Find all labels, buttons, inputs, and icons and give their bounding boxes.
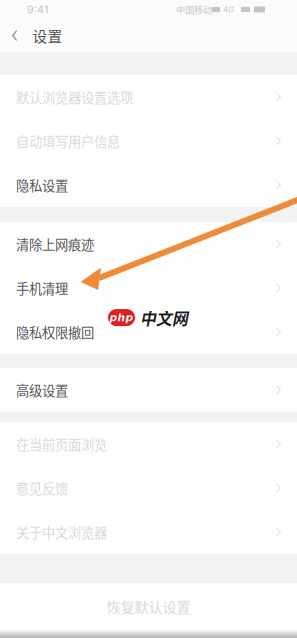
button[interactable]: 自动填写用户信息 — [0, 119, 297, 163]
staticText: 高级设置 — [16, 380, 68, 400]
button[interactable]: 恢复默认设置 — [0, 583, 297, 630]
staticText: php — [109, 311, 133, 324]
staticText: 中国移动 — [176, 3, 212, 16]
button[interactable]: 隐私权限撤回 — [0, 310, 297, 354]
staticText: 隐私权限撤回 — [16, 322, 94, 342]
button[interactable]: 手机清理 — [0, 266, 297, 310]
staticText: 手机清理 — [16, 278, 68, 298]
staticText: 意见反馈 — [16, 478, 68, 498]
button[interactable]: 在当前页面浏览 — [0, 422, 297, 466]
staticText: 隐私设置 — [16, 175, 68, 195]
button[interactable]: Back — [6, 24, 23, 47]
staticText: 默认浏览器设置选项 — [16, 87, 133, 107]
staticText: 在当前页面浏览 — [16, 434, 107, 454]
button[interactable]: 意见反馈 — [0, 466, 297, 510]
staticText: 中文网 — [140, 306, 188, 329]
staticText: 清除上网痕迹 — [16, 234, 94, 254]
staticText: 设置 — [32, 25, 62, 46]
button[interactable]: 清除上网痕迹 — [0, 222, 297, 266]
staticText: 4G — [223, 5, 234, 14]
button[interactable]: 关于中文浏览器 — [0, 510, 297, 554]
staticText: 自动填写用户信息 — [16, 131, 120, 151]
staticText: 9:41 — [27, 3, 48, 16]
staticText: 恢复默认设置 — [106, 596, 190, 617]
button[interactable]: 默认浏览器设置选项 — [0, 75, 297, 119]
button[interactable]: 高级设置 — [0, 368, 297, 412]
staticText: 关于中文浏览器 — [16, 522, 107, 542]
button[interactable]: 隐私设置 — [0, 163, 297, 207]
